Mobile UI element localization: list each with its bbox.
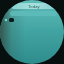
button[interactable]: Today	[11, 3, 56, 9]
button[interactable]: More	[9, 18, 14, 22]
staticText: Today	[28, 4, 40, 9]
button[interactable]: Refresh	[4, 18, 8, 22]
button[interactable]	[10, 11, 57, 16]
